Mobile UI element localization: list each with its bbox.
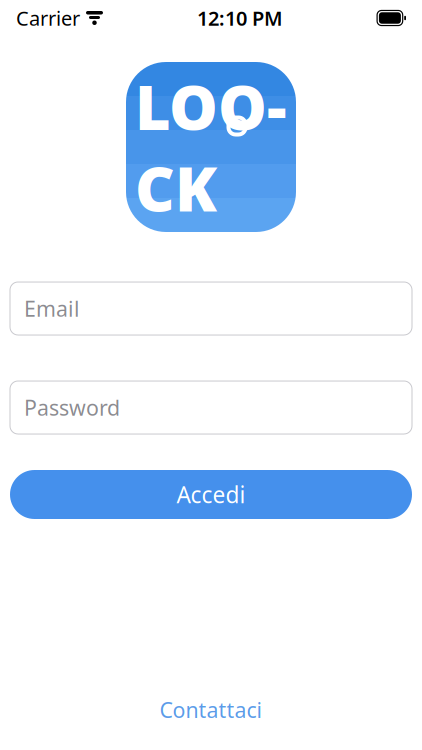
staticText: Contattaci [159,696,262,724]
staticText: LOOCK [135,66,287,228]
staticText: Email [24,294,80,323]
button[interactable]: Contattaci [135,686,286,734]
staticText: Password [24,393,120,422]
staticText: Carrier [16,5,80,31]
staticText: 12:10 PM [197,5,283,31]
button[interactable]: Accedi [10,470,412,519]
staticText: Accedi [176,479,245,509]
